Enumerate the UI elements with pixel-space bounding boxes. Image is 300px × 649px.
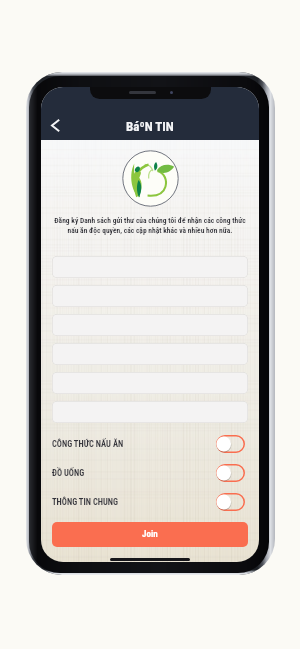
button[interactable]: [52, 285, 248, 307]
staticText: Join: [142, 529, 158, 540]
button[interactable]: [52, 372, 248, 394]
staticText: BáºN TIN: [126, 119, 174, 134]
button[interactable]: THÔNG TIN CHUNG: [41, 493, 259, 511]
button[interactable]: ĐỒ UỐNG: [41, 464, 259, 482]
staticText: ĐỒ UỐNG: [52, 468, 85, 478]
button[interactable]: Back: [45, 115, 65, 135]
button[interactable]: [52, 256, 248, 278]
button[interactable]: [52, 343, 248, 365]
staticText: THÔNG TIN CHUNG: [52, 497, 119, 507]
button[interactable]: [52, 401, 248, 423]
button[interactable]: CÔNG THỨC NẤU ĂN: [41, 435, 259, 453]
button[interactable]: Join: [52, 522, 248, 547]
button[interactable]: [52, 314, 248, 336]
staticText: CÔNG THỨC NẤU ĂN: [52, 439, 124, 449]
staticText: Đăng ký Danh sách gửi thư của chúng tôi …: [47, 216, 253, 235]
